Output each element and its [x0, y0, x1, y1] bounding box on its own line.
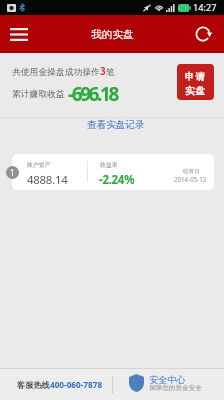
button[interactable]: 申请	[177, 64, 214, 100]
button[interactable]: Refresh	[182, 15, 224, 53]
staticText: 查看实盘记录	[87, 119, 145, 131]
staticText: 我的实盘	[91, 28, 134, 41]
button[interactable]: Open navigation menu	[0, 15, 38, 53]
staticText: 申请	[185, 71, 207, 83]
button[interactable]: 账户资产	[12, 154, 214, 190]
staticText: -2.24%	[99, 172, 135, 188]
staticText: 2014-05-12	[174, 175, 207, 183]
staticText: 1	[10, 167, 15, 178]
staticText: 14:27	[193, 1, 217, 14]
staticText: 累计赚取收益	[12, 89, 65, 100]
staticText: 3	[100, 65, 106, 78]
button[interactable]: 安全中心	[113, 369, 224, 400]
staticText: 客服热线	[17, 380, 50, 390]
button[interactable]: 查看实盘记录	[81, 117, 151, 133]
staticText: 账户资产	[27, 161, 51, 168]
button[interactable]: 客服热线	[0, 369, 112, 400]
staticText: 保障您的资金安全	[149, 384, 202, 392]
staticText: 400-060-7878	[50, 379, 103, 390]
staticText: 收益率	[100, 161, 118, 168]
staticText: 共使用金操盘成功操作	[12, 67, 100, 78]
staticText: 4888.14	[27, 172, 68, 188]
staticText: 笔	[106, 67, 115, 78]
staticText: 安全中心	[149, 374, 186, 386]
staticText: 结算日	[183, 168, 200, 175]
staticText: 实盘	[185, 85, 207, 97]
staticText: -696.18	[68, 81, 117, 107]
